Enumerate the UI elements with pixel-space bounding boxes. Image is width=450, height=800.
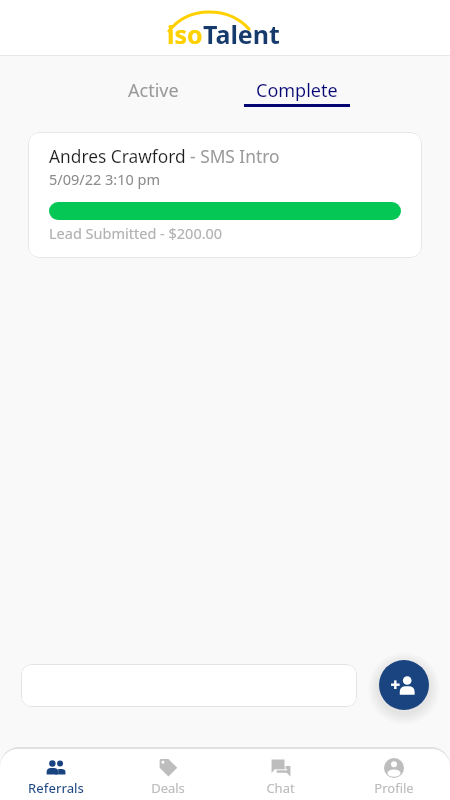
staticText: Active [128,78,179,103]
staticText: 5/09/22 3:10 pm [49,169,161,189]
staticText: Talent [203,17,280,51]
button[interactable]: Referrals [0,749,112,800]
button[interactable]: Chat [224,749,337,800]
button[interactable]: Deals [112,749,224,800]
staticText: Profile [374,779,414,797]
staticText: Complete [256,78,338,103]
staticText: Lead Submitted - $200.00 [49,223,223,243]
staticText: Chat [266,779,295,797]
button[interactable]: Active [81,56,225,110]
button[interactable]: Add referral [379,660,429,710]
staticText: Andres Crawford - SMS Intro [49,145,280,169]
staticText: Referrals [28,779,84,797]
staticText: Deals [151,779,185,797]
button[interactable]: Search referrals [21,664,357,707]
button[interactable]: Andres Crawford - SMS Intro [28,132,422,258]
staticText: iso [167,17,203,51]
button[interactable]: Complete [225,56,369,110]
button[interactable]: Profile [337,749,450,800]
